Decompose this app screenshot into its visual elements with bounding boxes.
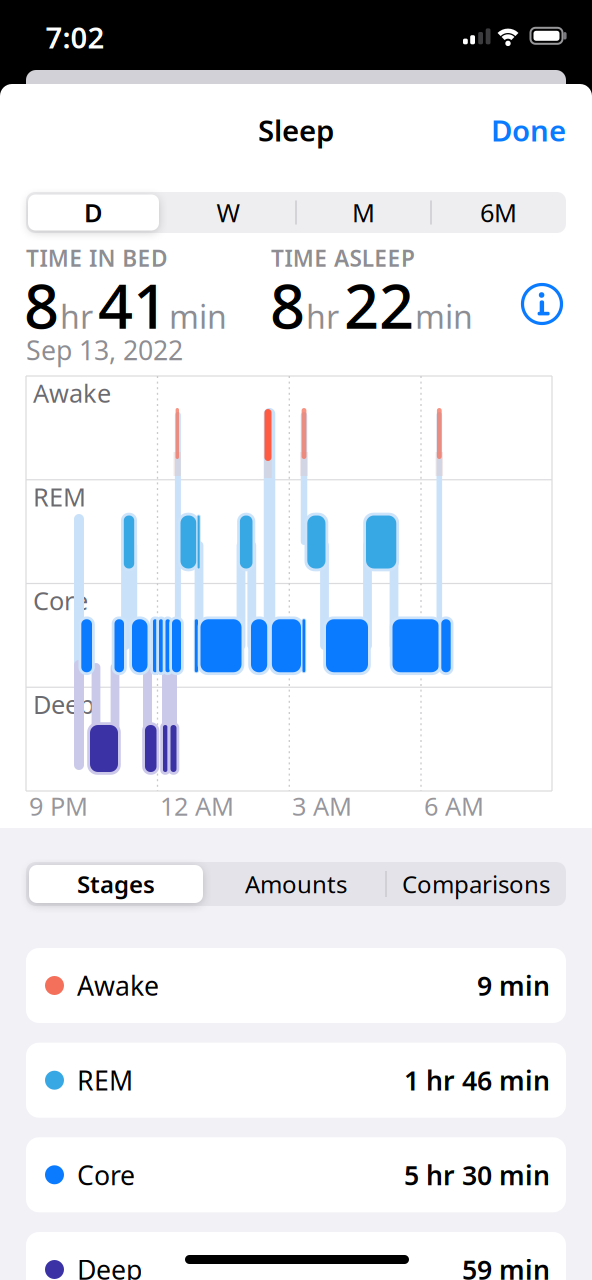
button[interactable]: D xyxy=(26,192,161,232)
staticText: 22 xyxy=(344,264,414,346)
staticText: min xyxy=(169,295,227,338)
staticText: REM xyxy=(33,480,86,513)
staticText: 12 AM xyxy=(160,789,234,823)
staticText: hr xyxy=(306,295,339,338)
staticText: Amounts xyxy=(245,868,347,900)
staticText: M xyxy=(352,196,375,229)
staticText: 5 hr 30 min xyxy=(404,1157,550,1192)
staticText: TIME IN BED xyxy=(26,243,168,273)
button[interactable]: Stages xyxy=(27,864,205,904)
staticText: 7:02 xyxy=(45,17,104,56)
staticText: TIME ASLEEP xyxy=(271,243,415,273)
button[interactable]: W xyxy=(161,192,296,232)
staticText: Awake xyxy=(33,376,111,410)
staticText: 1 hr 46 min xyxy=(404,1062,550,1098)
staticText: 8 xyxy=(24,264,59,346)
staticText: D xyxy=(84,196,103,229)
staticText: Sleep xyxy=(258,110,334,149)
staticText: min xyxy=(415,295,473,338)
staticText: Done xyxy=(491,110,566,149)
staticText: Core xyxy=(77,1157,135,1192)
staticText: Deep xyxy=(77,1252,142,1280)
staticText: Awake xyxy=(77,968,159,1003)
button[interactable]: M xyxy=(296,192,431,232)
staticText: 59 min xyxy=(462,1252,550,1280)
button[interactable]: Comparisons xyxy=(387,864,565,904)
staticText: Comparisons xyxy=(402,868,550,900)
staticText: 6M xyxy=(480,196,517,229)
button[interactable]: Done xyxy=(456,108,566,152)
button[interactable]: More information xyxy=(522,284,562,324)
staticText: 9 PM xyxy=(29,789,88,823)
staticText: Stages xyxy=(77,868,155,900)
staticText: Core xyxy=(33,584,88,617)
staticText: 9 min xyxy=(477,968,550,1003)
staticText: hr xyxy=(60,295,93,338)
staticText: Deep xyxy=(33,687,95,721)
staticText: Sep 13, 2022 xyxy=(26,332,183,368)
staticText: 6 AM xyxy=(424,789,484,823)
staticText: 3 AM xyxy=(292,789,352,823)
staticText: REM xyxy=(77,1062,133,1098)
staticText: 8 xyxy=(270,264,305,346)
staticText: W xyxy=(216,196,240,229)
button[interactable]: 6M xyxy=(431,192,566,232)
button[interactable]: Amounts xyxy=(207,864,385,904)
staticText: 41 xyxy=(98,264,168,346)
